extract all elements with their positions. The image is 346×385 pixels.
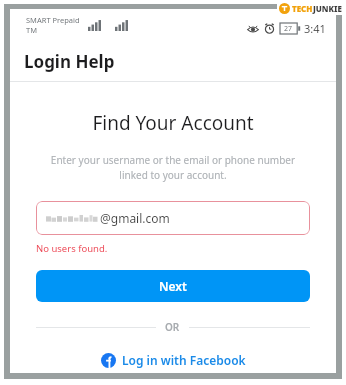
- staticText: No users found.: [36, 242, 108, 255]
- staticText: Log in with Facebook: [122, 352, 246, 368]
- staticText: TECH: [292, 3, 313, 14]
- staticText: Enter your username or the email or phon…: [36, 153, 310, 182]
- staticText: @gmail.com: [100, 210, 170, 226]
- staticText: Login Help: [24, 50, 115, 73]
- staticText: SMART Prepaid: [26, 15, 80, 25]
- button[interactable]: Next: [36, 270, 310, 302]
- staticText: Find Your Account: [92, 110, 254, 136]
- staticText: JUNKIE: [313, 3, 342, 14]
- staticText: 3:41: [304, 21, 326, 36]
- staticText: Next: [159, 278, 187, 294]
- other: Facebook: [101, 353, 116, 368]
- button[interactable]: Facebook: [36, 349, 310, 371]
- button[interactable]: @gmail.com: [36, 201, 310, 235]
- staticText: OR: [165, 320, 180, 334]
- staticText: 27: [284, 24, 293, 34]
- staticText: TM: [26, 25, 37, 35]
